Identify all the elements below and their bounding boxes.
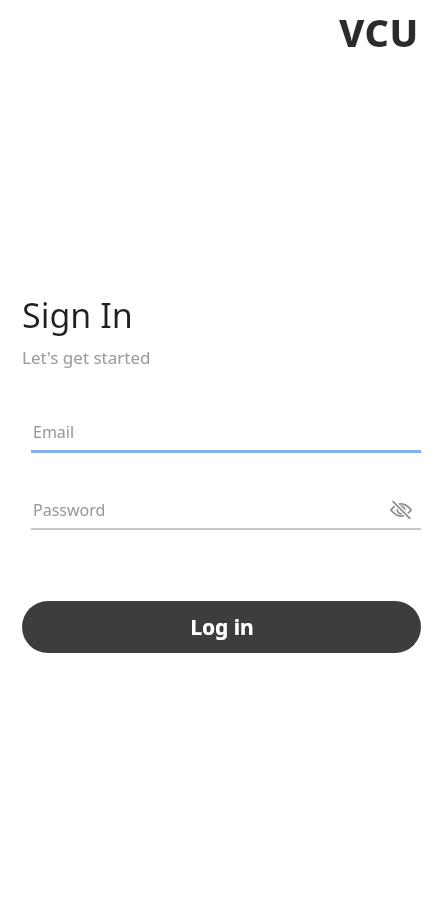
button[interactable]: Show password: [386, 495, 416, 525]
staticText: Log in: [190, 613, 254, 642]
button[interactable]: Log in: [22, 601, 421, 653]
button[interactable]: Password: [22, 492, 412, 530]
staticText: VCU: [339, 6, 419, 58]
staticText: Sign In: [22, 292, 133, 338]
button[interactable]: Email: [22, 414, 412, 453]
staticText: Password: [33, 499, 106, 521]
staticText: Let's get started: [22, 346, 151, 369]
staticText: Email: [33, 421, 75, 443]
button[interactable]: VCU: [337, 4, 421, 60]
